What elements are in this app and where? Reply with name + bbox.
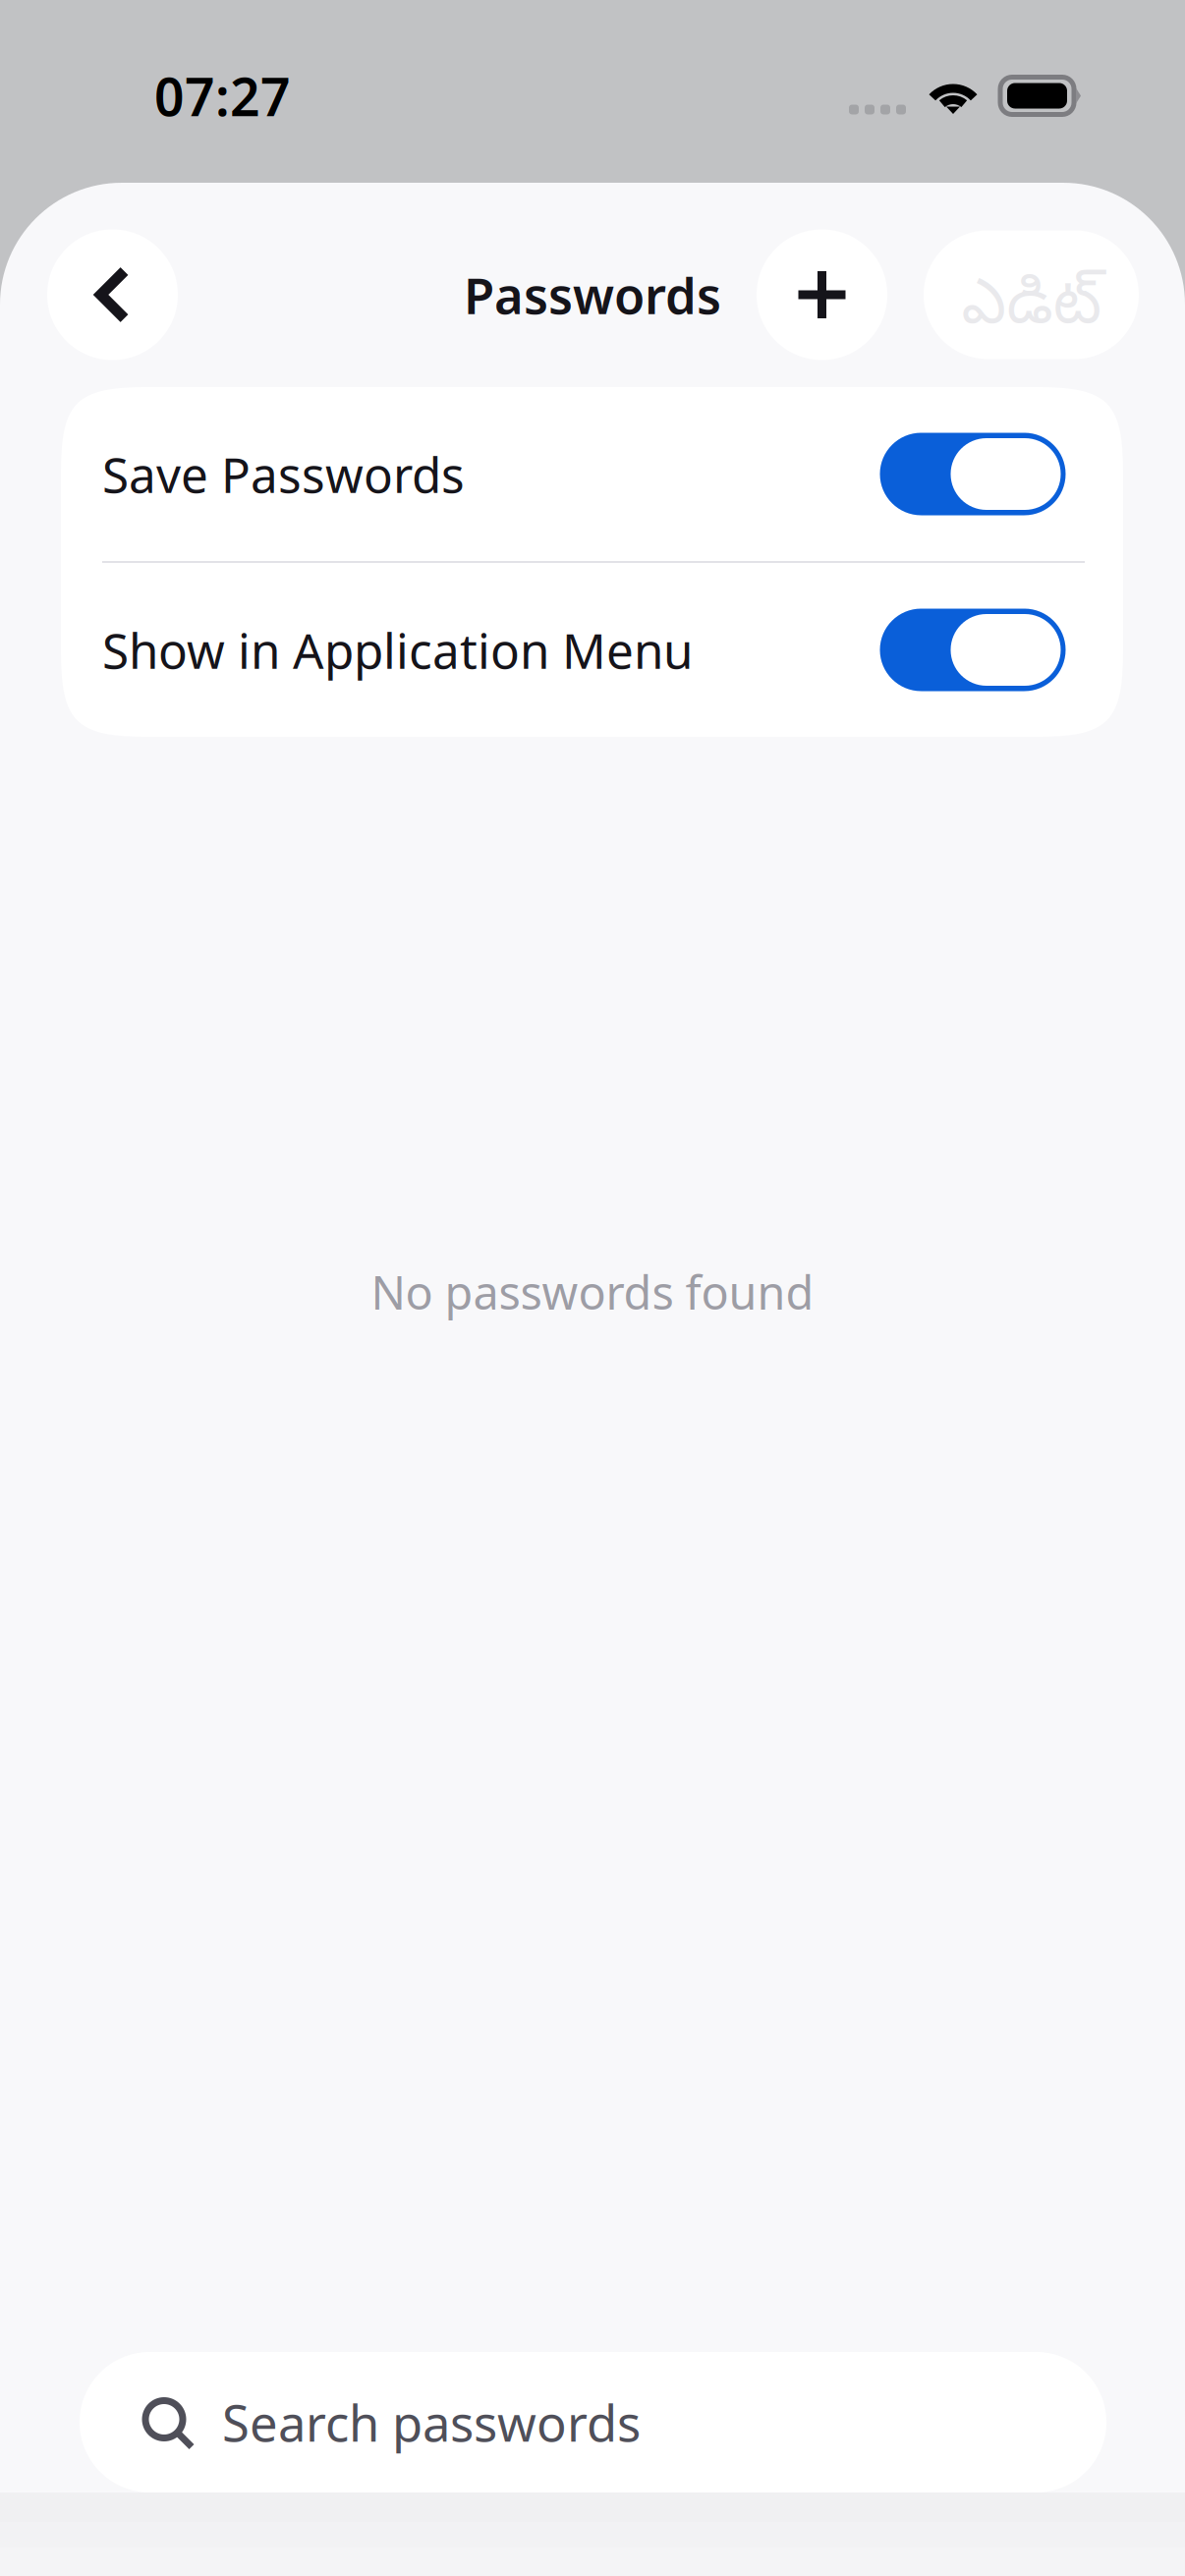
staticText: ఎడిట్ xyxy=(961,269,1101,352)
staticText: No passwords found xyxy=(371,1261,814,1322)
button[interactable]: Save Passwords xyxy=(61,387,1123,561)
button[interactable]: Edit xyxy=(924,230,1139,359)
staticText: Show in Application Menu xyxy=(102,618,693,682)
staticText: Passwords xyxy=(464,262,721,328)
button[interactable]: Show in Application Menu xyxy=(61,563,1123,737)
button[interactable]: Search passwords xyxy=(80,2352,1106,2492)
button[interactable]: Add password xyxy=(757,229,887,360)
staticText: Save Passwords xyxy=(102,442,465,506)
staticText: Search passwords xyxy=(222,2389,641,2455)
button[interactable]: Back xyxy=(47,229,178,360)
staticText: 07:27 xyxy=(154,61,291,131)
